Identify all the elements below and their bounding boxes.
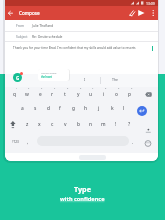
button[interactable]: a: [16, 104, 28, 113]
staticText: the heart: [41, 75, 53, 78]
button[interactable]: m: [97, 120, 109, 129]
button[interactable]: 8: [103, 86, 109, 90]
button[interactable]: z: [21, 120, 33, 129]
staticText: 9: [118, 87, 120, 90]
button[interactable]: 7: [90, 86, 96, 90]
button[interactable]: f: [54, 104, 66, 113]
button[interactable]: u: [85, 90, 97, 99]
staticText: .: [132, 139, 134, 145]
button[interactable]: 0: [129, 86, 135, 90]
button[interactable]: with confidence: [60, 195, 105, 203]
button[interactable]: j: [93, 104, 105, 113]
staticText: k: [111, 105, 114, 112]
button[interactable]: !: [110, 120, 122, 129]
button[interactable]: 9: [116, 86, 122, 90]
button[interactable]: [9, 120, 17, 129]
staticText: 5: [67, 87, 69, 90]
staticText: 4: [54, 87, 56, 90]
button[interactable]: 1: [14, 86, 20, 90]
button[interactable]: n: [85, 120, 97, 129]
staticText: ?: [128, 121, 131, 128]
staticText: f: [59, 105, 61, 112]
staticText: 6: [80, 87, 82, 90]
staticText: o: [115, 91, 118, 98]
button[interactable]: Add an article: [38, 69, 69, 81]
staticText: m: [101, 121, 106, 128]
staticText: b: [77, 121, 80, 128]
button[interactable]: 6: [78, 86, 84, 90]
button[interactable]: 4: [52, 86, 58, 90]
button[interactable]: q: [8, 90, 20, 99]
button[interactable]: p: [123, 90, 135, 99]
button[interactable]: From: [5, 20, 158, 31]
staticText: G: [16, 75, 20, 81]
staticText: 7: [92, 87, 94, 90]
staticText: ?123: [12, 140, 19, 144]
button[interactable]: c: [46, 120, 58, 129]
staticText: x: [38, 121, 41, 128]
button[interactable]: d: [42, 104, 54, 113]
button[interactable]: ?: [123, 120, 135, 129]
button[interactable]: [137, 106, 147, 116]
staticText: 0: [131, 87, 133, 90]
button[interactable]: 5: [65, 86, 71, 90]
staticText: q: [13, 91, 16, 98]
button[interactable]: g: [67, 104, 79, 113]
staticText: l: [123, 105, 125, 112]
staticText: 8: [105, 87, 107, 90]
button[interactable]: k: [106, 104, 118, 113]
staticText: n: [89, 121, 93, 128]
button[interactable]: x: [33, 120, 45, 129]
staticText: s: [34, 105, 37, 112]
staticText: r: [51, 91, 54, 98]
button[interactable]: [144, 140, 152, 148]
button[interactable]: Subject: [5, 31, 158, 42]
staticText: !: [115, 121, 117, 128]
button[interactable]: e: [34, 90, 46, 99]
button[interactable]: o: [110, 90, 122, 99]
button[interactable]: 3: [39, 86, 45, 90]
staticText: 1: [16, 87, 18, 90]
button[interactable]: [145, 126, 152, 135]
button[interactable]: y: [72, 90, 84, 99]
button[interactable]: s: [29, 104, 41, 113]
button[interactable]: l: [118, 104, 130, 113]
staticText: The: [112, 77, 118, 82]
button[interactable]: Compose: [19, 10, 40, 16]
staticText: c: [51, 121, 54, 128]
button[interactable]: ,: [22, 137, 34, 146]
staticText: v: [64, 121, 67, 128]
button[interactable]: G: [13, 73, 22, 82]
staticText: h: [84, 105, 88, 112]
button[interactable]: I: [79, 75, 91, 84]
button[interactable]: Thank you for your time Brad. I'm confid…: [13, 46, 158, 52]
button[interactable]: t: [59, 90, 71, 99]
staticText: i: [103, 91, 105, 98]
staticText: w: [25, 91, 29, 98]
button[interactable]: 2: [26, 86, 32, 90]
staticText: a: [21, 105, 24, 112]
staticText: From: [16, 23, 25, 27]
button[interactable]: [5, 6, 158, 20]
staticText: z: [26, 121, 29, 128]
button[interactable]: .: [127, 137, 139, 146]
staticText: Julie Thofland: [32, 23, 54, 27]
button[interactable]: v: [59, 120, 71, 129]
staticText: u: [89, 91, 93, 98]
button[interactable]: [145, 92, 152, 97]
button[interactable]: i: [98, 90, 110, 99]
button[interactable]: The: [107, 75, 123, 84]
staticText: Re: Onsite schedule: [32, 34, 63, 38]
button[interactable]: w: [21, 90, 33, 99]
staticText: e: [39, 91, 42, 98]
staticText: 2: [28, 87, 30, 90]
button[interactable]: r: [46, 90, 58, 99]
staticText: y: [77, 91, 80, 98]
button[interactable]: ?123: [8, 137, 22, 146]
button[interactable]: h: [80, 104, 92, 113]
button[interactable]: Type: [74, 184, 91, 194]
staticText: I: [84, 77, 86, 82]
staticText: t: [64, 91, 66, 98]
button[interactable]: b: [72, 120, 84, 129]
